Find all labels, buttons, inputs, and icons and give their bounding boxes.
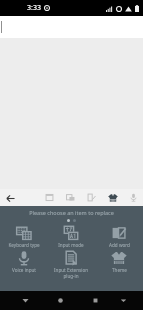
staticText: Input Extension plug-in [48, 267, 94, 279]
staticText: Voice input [12, 267, 36, 273]
button[interactable]: Input mode [47, 225, 95, 248]
button[interactable]: Voice input [126, 190, 141, 205]
staticText: Keyboard type [8, 242, 40, 248]
button[interactable] [0, 16, 143, 38]
button[interactable]: Document [84, 190, 99, 205]
button[interactable]: Home [51, 291, 69, 310]
button[interactable]: Voice input [0, 250, 47, 273]
staticText: Please choose an item to replace [0, 209, 143, 216]
button[interactable]: Recent apps [86, 291, 104, 310]
button[interactable]: Add word [95, 225, 143, 248]
button[interactable]: Back [16, 291, 34, 310]
staticText: Input mode [58, 242, 84, 248]
button[interactable]: Theme [95, 250, 143, 273]
button[interactable]: Input Extension plug-in [47, 250, 95, 279]
button[interactable]: Clipboard [42, 190, 57, 205]
button[interactable]: Hide keyboard [114, 291, 132, 310]
staticText: Theme [112, 267, 127, 273]
staticText: Add word [109, 242, 130, 248]
button[interactable]: Theme [105, 190, 120, 205]
staticText: 3:33 [27, 3, 41, 13]
button[interactable]: Back [3, 191, 17, 205]
button[interactable]: Keyboard type [0, 225, 47, 248]
button[interactable]: Image [63, 190, 78, 205]
